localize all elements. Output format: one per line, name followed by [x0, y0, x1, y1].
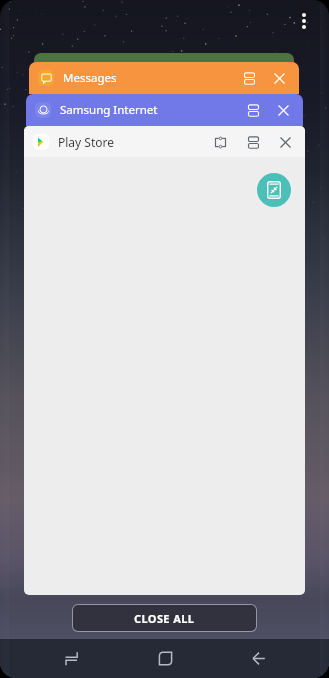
- staticText: Play Store: [58, 134, 114, 150]
- button[interactable]: Close: [266, 65, 292, 91]
- button[interactable]: Close: [272, 129, 298, 155]
- button[interactable]: Split screen view: [240, 97, 266, 123]
- button[interactable]: Samsung Internet: [26, 94, 303, 126]
- button[interactable]: Messages: [29, 62, 299, 94]
- button[interactable]: Back: [236, 639, 280, 678]
- button[interactable]: Pop-up view: [257, 173, 291, 207]
- button[interactable]: Home: [143, 639, 187, 678]
- staticText: Messages: [63, 70, 117, 86]
- button[interactable]: Play Store: [24, 126, 305, 157]
- staticText: Samsung Internet: [60, 102, 158, 118]
- button[interactable]: Close: [270, 97, 296, 123]
- staticText: CLOSE ALL: [134, 611, 195, 626]
- button[interactable]: More options: [299, 13, 309, 31]
- button[interactable]: Pop-up view: [207, 129, 233, 155]
- button[interactable]: Recents: [49, 639, 93, 678]
- button[interactable]: Split screen view: [236, 65, 262, 91]
- button[interactable]: Split screen view: [240, 129, 266, 155]
- button[interactable]: CLOSE ALL: [73, 605, 256, 631]
